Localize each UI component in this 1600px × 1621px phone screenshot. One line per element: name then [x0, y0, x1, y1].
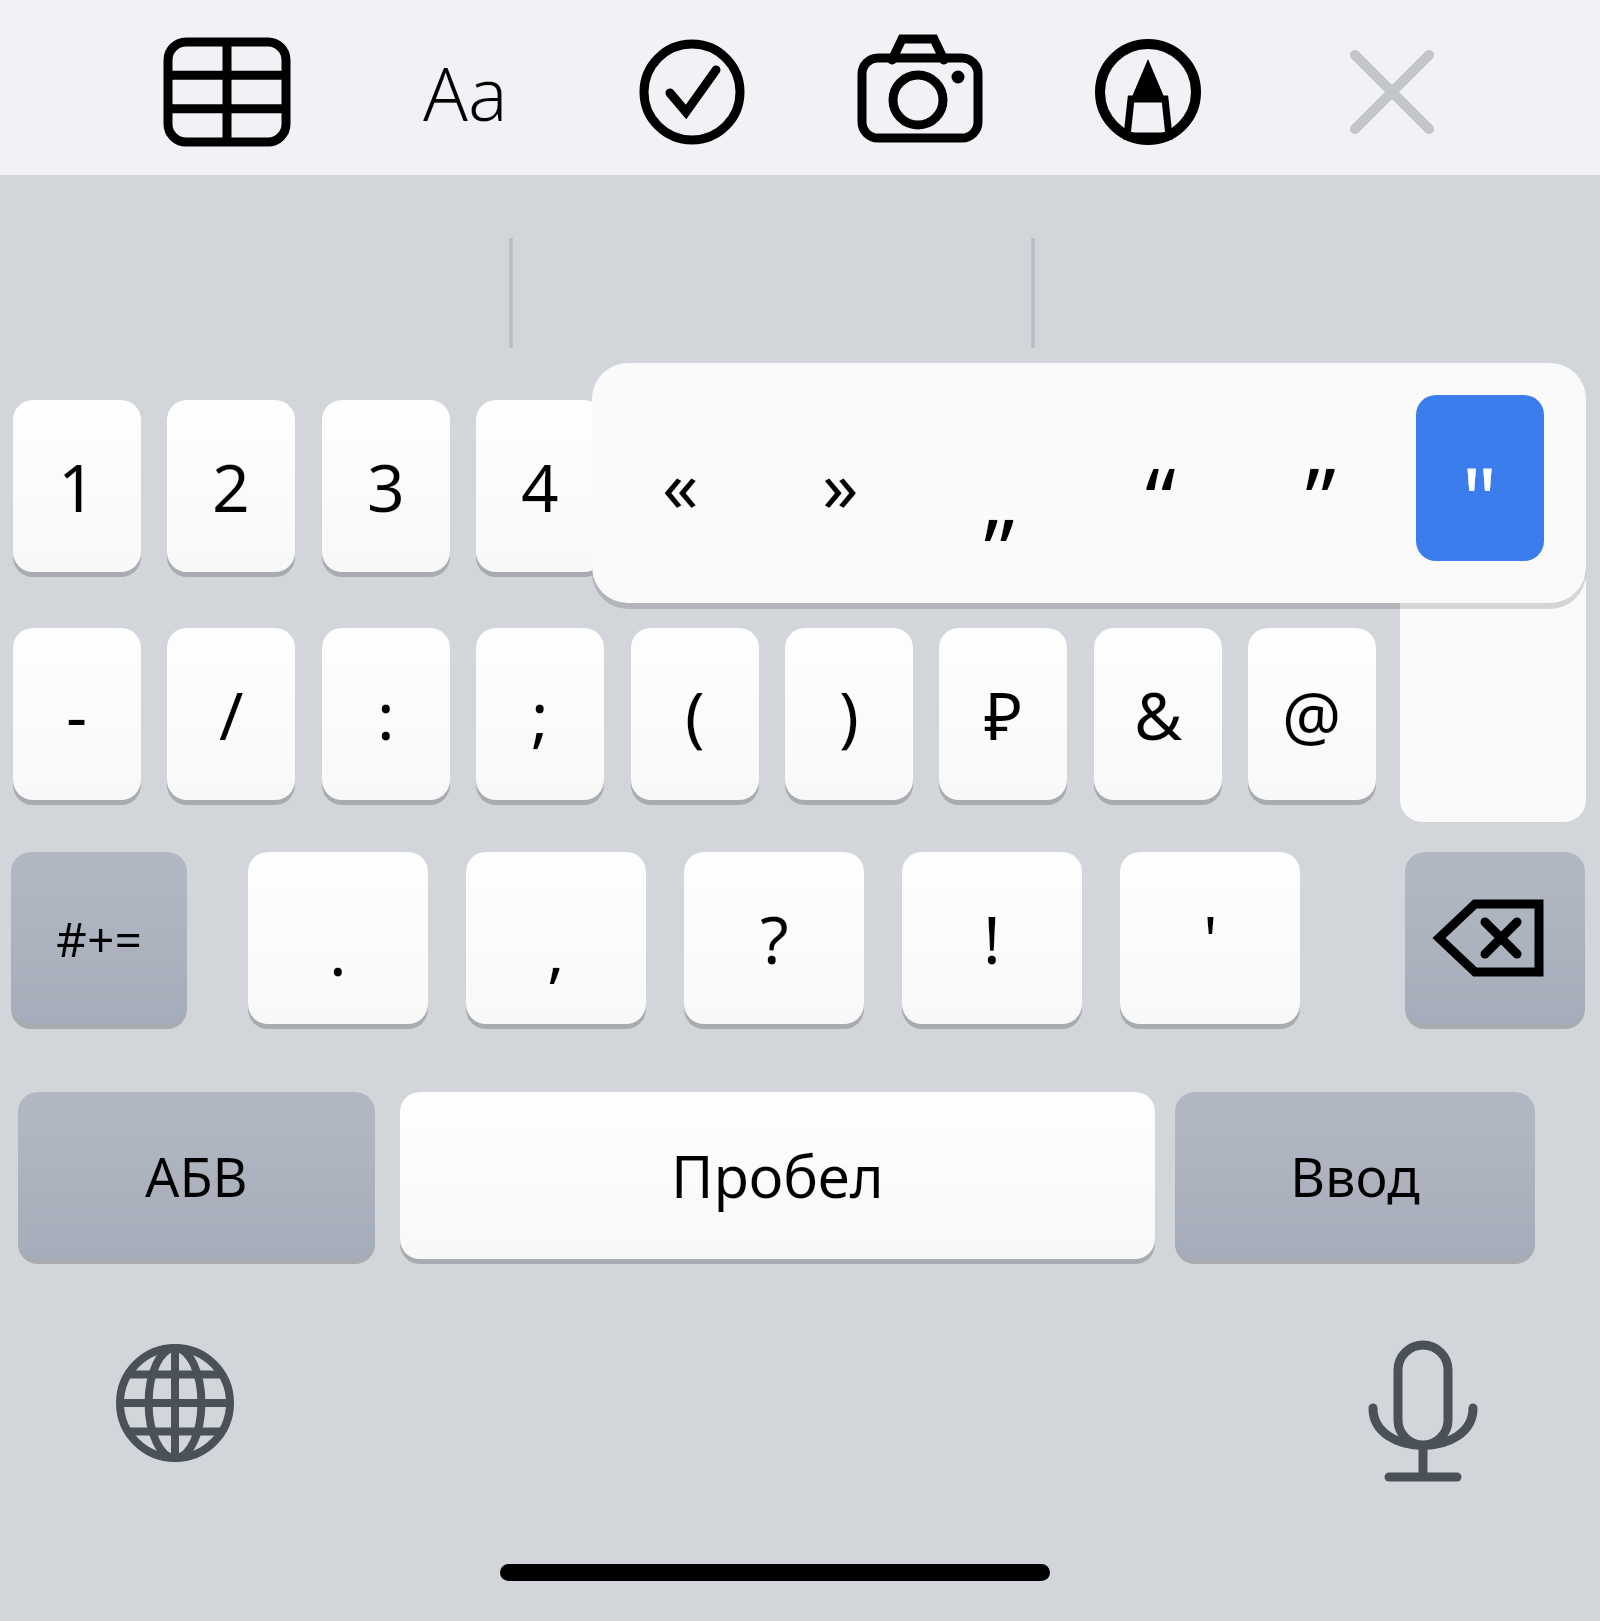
staticText: 8: [1139, 441, 1177, 531]
staticText: Пробел: [671, 1136, 884, 1215]
button[interactable]: ): [785, 628, 913, 800]
staticText: 0: [1448, 441, 1486, 531]
button[interactable]: 1: [13, 400, 141, 572]
button[interactable]: 7: [939, 400, 1067, 572]
button[interactable]: /: [167, 628, 295, 800]
staticText: 4: [521, 441, 559, 531]
staticText: ,: [547, 905, 565, 995]
staticText: 2: [212, 441, 250, 531]
button[interactable]: ”: [1256, 395, 1384, 561]
button[interactable]: Table: [167, 32, 287, 152]
button[interactable]: &: [1094, 628, 1222, 800]
staticText: „: [982, 438, 1018, 555]
staticText: 9: [1293, 441, 1331, 531]
button[interactable]: “: [1096, 395, 1224, 561]
button[interactable]: Close: [1332, 32, 1452, 152]
staticText: /: [219, 669, 244, 759]
staticText: ?: [760, 893, 789, 983]
button[interactable]: 4: [476, 400, 604, 572]
button[interactable]: Checklist: [632, 32, 752, 152]
button[interactable]: ₽: [939, 628, 1067, 800]
button[interactable]: Markup: [1088, 32, 1208, 152]
button[interactable]: ': [1120, 852, 1300, 1024]
staticText: 1: [58, 441, 96, 531]
staticText: ": [1462, 438, 1498, 555]
button[interactable]: -: [13, 628, 141, 800]
button[interactable]: Aa: [405, 32, 525, 152]
staticText: “: [1145, 438, 1176, 555]
button[interactable]: Dictation: [1353, 1333, 1493, 1473]
staticText: .: [329, 905, 347, 995]
button[interactable]: ?: [684, 852, 864, 1024]
staticText: ': [1203, 893, 1218, 983]
staticText: !: [983, 893, 1001, 983]
staticText: &: [1134, 669, 1183, 759]
button[interactable]: 9: [1248, 400, 1376, 572]
staticText: 6: [830, 441, 868, 531]
staticText: 3: [367, 441, 405, 531]
staticText: ”: [1305, 438, 1336, 555]
button[interactable]: Change keyboard: [105, 1333, 245, 1473]
staticText: -: [66, 669, 88, 759]
button[interactable]: 8: [1094, 400, 1222, 572]
staticText: @: [1282, 669, 1342, 759]
button[interactable]: „: [936, 395, 1064, 561]
staticText: (: [685, 669, 705, 759]
staticText: ₽: [984, 669, 1023, 759]
button[interactable]: !: [902, 852, 1082, 1024]
staticText: #+=: [56, 906, 142, 971]
staticText: ;: [531, 669, 549, 759]
button[interactable]: Ввод: [1175, 1092, 1535, 1259]
button[interactable]: :: [322, 628, 450, 800]
button[interactable]: ,: [466, 852, 646, 1024]
staticText: «: [662, 435, 699, 533]
button[interactable]: 0: [1403, 400, 1531, 572]
button[interactable]: ;: [476, 628, 604, 800]
button[interactable]: АБВ: [18, 1092, 375, 1259]
staticText: 7: [984, 441, 1022, 531]
button[interactable]: 2: [167, 400, 295, 572]
button[interactable]: »: [776, 395, 904, 561]
button[interactable]: ": [1416, 395, 1544, 561]
button[interactable]: 5: [631, 400, 759, 572]
staticText: ): [839, 669, 859, 759]
button[interactable]: Camera: [860, 32, 980, 152]
button[interactable]: Delete: [1405, 852, 1585, 1024]
staticText: :: [377, 669, 395, 759]
button[interactable]: «: [616, 395, 744, 561]
button[interactable]: 3: [322, 400, 450, 572]
button[interactable]: #+=: [11, 852, 187, 1024]
staticText: 5: [676, 441, 714, 531]
button[interactable]: 6: [785, 400, 913, 572]
button[interactable]: .: [248, 852, 428, 1024]
staticText: »: [822, 435, 859, 533]
staticText: АБВ: [145, 1139, 248, 1213]
staticText: Aa: [423, 42, 508, 143]
button[interactable]: Пробел: [400, 1092, 1155, 1259]
staticText: Ввод: [1290, 1139, 1420, 1213]
button[interactable]: (: [631, 628, 759, 800]
button[interactable]: @: [1248, 628, 1376, 800]
